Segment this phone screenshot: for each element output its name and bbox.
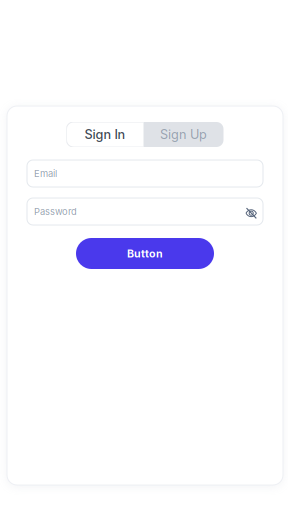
staticText: Sign In	[84, 127, 125, 142]
staticText: Button	[127, 247, 163, 260]
button[interactable]: Show password	[245, 206, 257, 217]
staticText: Email	[34, 168, 57, 179]
staticText: Sign Up	[160, 127, 207, 142]
button[interactable]: Sign In	[66, 122, 143, 147]
button[interactable]: Sign Up	[143, 122, 223, 147]
staticText: Password	[34, 206, 77, 217]
button[interactable]: Button	[76, 238, 214, 269]
